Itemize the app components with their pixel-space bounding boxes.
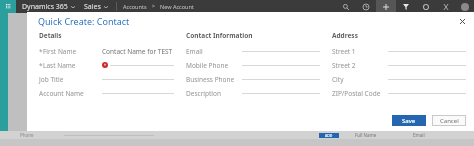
staticText: Email [186, 47, 203, 56]
button[interactable]: App launcher [0, 0, 16, 13]
staticText: > [152, 3, 155, 10]
staticText: Details [39, 31, 62, 40]
button[interactable]: Recent [356, 0, 376, 13]
staticText: ZIP/Postal Code [332, 89, 381, 98]
staticText: Address [332, 31, 358, 40]
button[interactable]: * [39, 58, 174, 72]
button[interactable]: Search [336, 0, 356, 13]
staticText: Account Name [39, 89, 84, 98]
button[interactable]: * [39, 44, 174, 58]
button[interactable]: Account [456, 0, 474, 13]
staticText: Contact Name for TEST [102, 47, 173, 56]
button[interactable]: ZIP/Postal Code [332, 86, 466, 100]
staticText: ADD [325, 133, 333, 138]
staticText: * [39, 47, 43, 56]
button[interactable]: Business Phone [186, 72, 320, 86]
staticText: Save [402, 117, 416, 125]
button[interactable]: Account Name [39, 86, 174, 100]
staticText: Description [186, 89, 221, 98]
button[interactable]: Settings [416, 0, 436, 13]
staticText: Last Name [43, 61, 76, 70]
staticText: New Account [160, 3, 194, 10]
button[interactable]: City [332, 72, 466, 86]
staticText: City [332, 75, 344, 84]
staticText: Mobile Phone [186, 61, 229, 70]
button[interactable]: Save [392, 115, 426, 126]
staticText: Dynamics 365 [22, 2, 68, 12]
staticText: First Name [43, 47, 77, 56]
button[interactable]: Help [436, 0, 456, 13]
button[interactable]: ADD [319, 133, 339, 138]
button[interactable]: Cancel [432, 115, 466, 126]
staticText: Business Phone [186, 75, 235, 84]
staticText: Phone [20, 132, 34, 138]
button[interactable]: Job Title [39, 72, 174, 86]
button[interactable]: Email [186, 44, 320, 58]
button[interactable]: Description [186, 86, 320, 100]
staticText: Quick Create: Contact [38, 15, 130, 27]
button[interactable]: Filter [396, 0, 416, 13]
staticText: Full Name [355, 132, 377, 138]
button[interactable]: Mobile Phone [186, 58, 320, 72]
staticText: Sales [84, 2, 101, 12]
button[interactable]: Street 2 [332, 58, 466, 72]
staticText: Street 1 [332, 47, 356, 56]
button[interactable]: New [376, 0, 396, 13]
button[interactable]: Close [456, 15, 468, 27]
staticText: Job Title [39, 75, 64, 84]
staticText: Cancel [440, 117, 459, 125]
staticText: Accounts [123, 3, 147, 10]
staticText: Email [413, 132, 425, 138]
staticText: Contact Information [186, 31, 253, 40]
staticText: * [39, 61, 43, 70]
button[interactable]: Street 1 [332, 44, 466, 58]
staticText: Street 2 [332, 61, 356, 70]
